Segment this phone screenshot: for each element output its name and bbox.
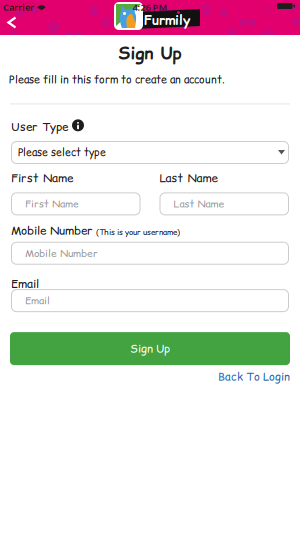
staticText: First Name bbox=[25, 197, 79, 211]
staticText: Please fill in this form to create an ac… bbox=[9, 72, 225, 87]
staticText: Email bbox=[11, 276, 39, 292]
staticText: Carrier bbox=[3, 1, 34, 13]
staticText: (This is your username) bbox=[96, 227, 180, 238]
staticText: Mobile Number bbox=[25, 246, 98, 260]
staticText: Last Name bbox=[159, 170, 217, 186]
staticText: Sign Up bbox=[118, 42, 181, 65]
button[interactable]: Last Name bbox=[159, 192, 289, 215]
staticText: Back To Login bbox=[218, 369, 290, 384]
staticText: 4:26 PM bbox=[132, 1, 167, 13]
staticText: Email bbox=[25, 293, 50, 308]
button[interactable]: Back bbox=[0, 12, 17, 33]
staticText: Furmily bbox=[144, 11, 190, 30]
button[interactable]: Mobile Number bbox=[11, 242, 289, 265]
staticText: Last Name bbox=[173, 197, 224, 211]
button[interactable]: About user types bbox=[72, 119, 84, 131]
button[interactable]: Email bbox=[11, 289, 289, 312]
staticText: Mobile Number bbox=[11, 222, 93, 239]
staticText: Sign Up bbox=[130, 341, 170, 356]
button[interactable]: First Name bbox=[11, 192, 140, 215]
staticText: First Name bbox=[11, 170, 73, 186]
button[interactable]: Sign Up bbox=[10, 332, 290, 365]
button[interactable]: Please select type bbox=[11, 141, 289, 164]
staticText: Please select type bbox=[18, 145, 106, 160]
button[interactable]: Back To Login bbox=[218, 369, 290, 384]
staticText: User Type bbox=[11, 119, 68, 135]
